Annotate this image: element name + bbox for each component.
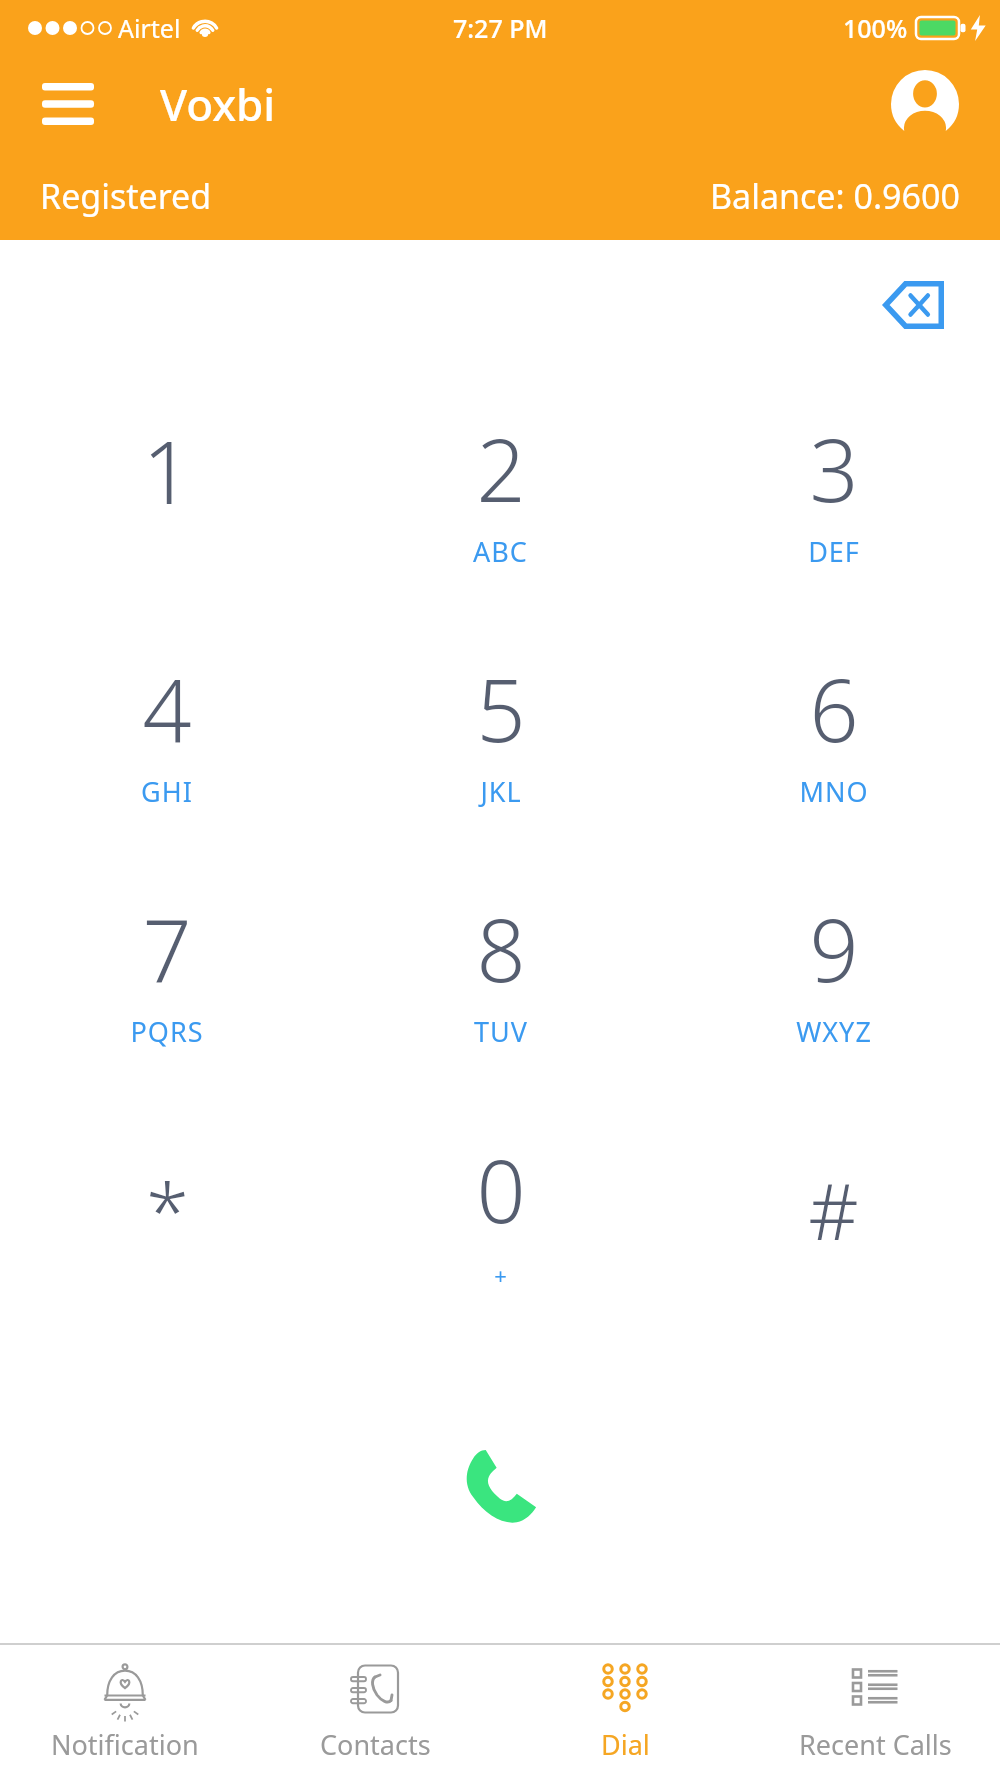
staticText: 2 [476, 410, 526, 527]
button[interactable]: 7 [0, 850, 334, 1090]
button[interactable]: Recent Calls [750, 1645, 1000, 1778]
staticText: + [494, 1260, 508, 1290]
staticText: DEF [808, 533, 860, 570]
button[interactable]: 3 [667, 370, 1000, 610]
staticText: 4 [142, 650, 192, 767]
staticText: 0 [476, 1131, 526, 1248]
button[interactable]: Profile [890, 69, 960, 139]
button[interactable]: 2 [334, 370, 667, 610]
staticText: Dial [601, 1726, 650, 1763]
staticText: 5 [476, 650, 526, 767]
staticText: # [808, 1157, 859, 1263]
staticText: TUV [474, 1013, 528, 1050]
staticText: Voxbi [160, 74, 276, 134]
staticText: 9 [809, 890, 859, 1007]
staticText: 8 [476, 890, 526, 1007]
button[interactable]: 6 [667, 610, 1000, 850]
staticText: Contacts [320, 1726, 431, 1763]
staticText: Notification [51, 1726, 199, 1763]
staticText: Recent Calls [799, 1726, 952, 1763]
button[interactable]: 9 [667, 850, 1000, 1090]
button[interactable]: Contacts [250, 1645, 500, 1778]
staticText: 100% [843, 11, 908, 45]
button[interactable]: # [667, 1090, 1000, 1330]
button[interactable]: 1 [0, 370, 334, 610]
button[interactable]: 0 [334, 1090, 667, 1330]
staticText: GHI [141, 773, 193, 810]
button[interactable]: 4 [0, 610, 334, 850]
button[interactable]: Dial [500, 1645, 750, 1778]
staticText: 7 [142, 890, 192, 1007]
staticText: MNO [799, 773, 869, 810]
staticText: Registered [40, 173, 212, 219]
staticText: Airtel [118, 11, 181, 45]
staticText: Balance: 0.9600 [710, 173, 960, 219]
staticText: 1 [142, 412, 192, 529]
staticText: JKL [480, 773, 522, 810]
staticText: WXYZ [796, 1013, 872, 1050]
button[interactable]: Menu [40, 76, 96, 132]
staticText: PQRS [130, 1013, 204, 1050]
button[interactable]: Backspace [870, 262, 956, 348]
button[interactable]: * [0, 1090, 334, 1330]
staticText: 7:27 PM [453, 11, 548, 45]
staticText: * [146, 1157, 189, 1263]
button[interactable]: Notification [0, 1645, 250, 1778]
staticText: ABC [473, 533, 528, 570]
button[interactable]: Call [440, 1427, 560, 1547]
button[interactable]: 5 [334, 610, 667, 850]
staticText: 3 [809, 410, 859, 527]
button[interactable]: 8 [334, 850, 667, 1090]
staticText: 6 [809, 650, 859, 767]
